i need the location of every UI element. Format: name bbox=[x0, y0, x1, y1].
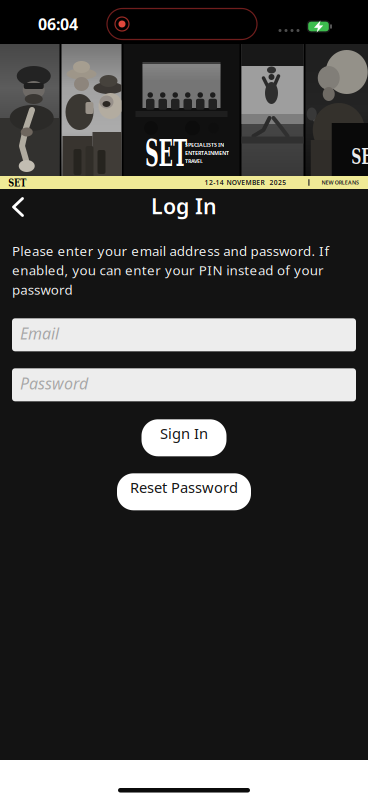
staticText: TRAVEL bbox=[185, 158, 203, 165]
staticText: SET bbox=[125, 131, 206, 175]
staticText: Log In bbox=[151, 192, 217, 220]
staticText: ENTERTAINMENT bbox=[185, 149, 229, 157]
staticText: Password bbox=[20, 373, 88, 394]
staticText: NEW ORLEANS bbox=[321, 179, 359, 186]
staticText: SPECIALISTS IN bbox=[185, 141, 224, 148]
staticText: SET bbox=[6, 176, 29, 189]
button[interactable]: Password bbox=[12, 368, 356, 401]
staticText: Reset Password bbox=[130, 478, 238, 497]
button[interactable]: Sign In bbox=[141, 419, 226, 456]
staticText: 12-14 NOVEMBER 2025 bbox=[205, 178, 286, 187]
button[interactable]: Reset Password bbox=[117, 473, 251, 510]
button[interactable]: Email bbox=[12, 318, 356, 351]
staticText: 06:04 bbox=[38, 13, 78, 35]
staticText: SET bbox=[342, 143, 368, 169]
staticText: Sign In bbox=[160, 424, 208, 443]
button[interactable]: Back bbox=[0, 195, 25, 222]
staticText: Please enter your email address and pass… bbox=[12, 242, 329, 298]
staticText: Email bbox=[20, 323, 59, 344]
